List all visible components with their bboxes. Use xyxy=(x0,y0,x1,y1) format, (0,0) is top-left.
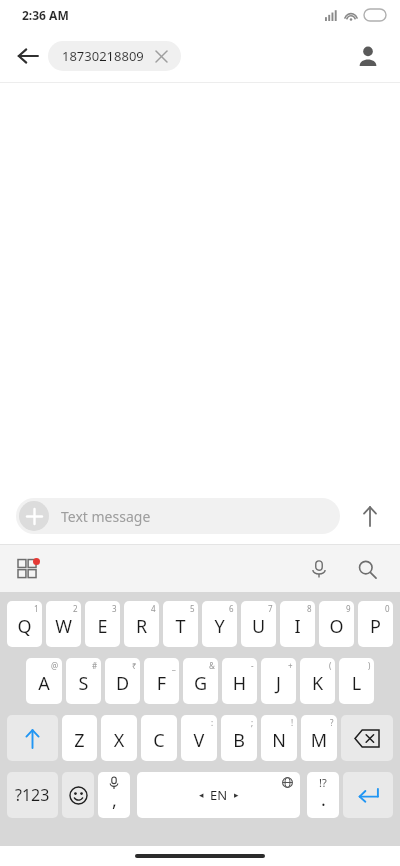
staticText: T xyxy=(163,614,198,639)
staticText: & xyxy=(209,660,215,671)
staticText: 1 xyxy=(34,603,39,614)
button[interactable]: Back xyxy=(8,36,48,76)
button[interactable]: 9 xyxy=(319,601,354,647)
staticText: ◂ xyxy=(199,790,204,800)
staticText: D xyxy=(105,671,140,696)
button[interactable]: 18730218809 xyxy=(48,41,181,71)
staticText: , xyxy=(112,788,117,813)
staticText: . xyxy=(321,787,326,812)
staticText: # xyxy=(92,660,98,671)
staticText: ▸ xyxy=(234,790,239,800)
button[interactable]: ?123 xyxy=(7,772,58,818)
button[interactable]: # xyxy=(66,658,101,704)
button[interactable] xyxy=(62,772,94,818)
button[interactable]: 4 xyxy=(124,601,159,647)
button[interactable]: 8 xyxy=(280,601,315,647)
button[interactable] xyxy=(341,715,393,761)
button[interactable]: ( xyxy=(300,658,335,704)
staticText: 18730218809 xyxy=(62,47,144,65)
button[interactable]: - xyxy=(222,658,257,704)
staticText: ? xyxy=(330,717,334,728)
staticText: F xyxy=(144,671,179,696)
button[interactable]: ; xyxy=(221,715,257,761)
staticText: Q xyxy=(7,614,42,639)
button[interactable]: Send xyxy=(348,494,392,538)
staticText: J xyxy=(261,671,296,696)
staticText: H xyxy=(222,671,257,696)
staticText: S xyxy=(66,671,101,696)
button[interactable]: & xyxy=(183,658,218,704)
staticText: N xyxy=(261,728,297,753)
staticText: A xyxy=(26,671,62,696)
button[interactable]: 0 xyxy=(358,601,393,647)
staticText: 8 xyxy=(307,603,312,614)
button[interactable]: 7 xyxy=(241,601,276,647)
button[interactable]: Stickers xyxy=(10,550,48,588)
staticText: 6 xyxy=(229,603,234,614)
staticText: K xyxy=(300,671,335,696)
staticText: ( xyxy=(329,660,332,671)
staticText: G xyxy=(183,671,218,696)
button[interactable]: 3 xyxy=(85,601,120,647)
staticText: U xyxy=(241,614,276,639)
staticText: E xyxy=(85,614,120,639)
staticText: _ xyxy=(172,660,176,671)
button[interactable]: Z xyxy=(62,715,97,761)
staticText: 3 xyxy=(112,603,117,614)
button[interactable]: X xyxy=(101,715,137,761)
button[interactable]: Search xyxy=(348,550,386,588)
staticText: I xyxy=(280,614,315,639)
staticText: W xyxy=(46,614,81,639)
button[interactable]: Text message xyxy=(16,498,340,534)
button[interactable]: + xyxy=(261,658,296,704)
button[interactable]: , xyxy=(98,772,130,818)
button[interactable] xyxy=(7,715,58,761)
staticText: ₹ xyxy=(132,660,137,671)
button[interactable]: ◂ xyxy=(137,772,300,818)
staticText: + xyxy=(288,660,293,671)
button[interactable]: ! xyxy=(261,715,297,761)
button[interactable]: @ xyxy=(26,658,62,704)
staticText: C xyxy=(141,728,177,753)
staticText: Text message xyxy=(61,507,151,526)
staticText: 4 xyxy=(151,603,156,614)
staticText: ; xyxy=(251,717,254,728)
staticText: !? xyxy=(319,775,327,790)
button[interactable] xyxy=(343,772,393,818)
staticText: P xyxy=(358,614,393,639)
staticText: ) xyxy=(368,660,371,671)
button[interactable]: !? xyxy=(307,772,339,818)
button[interactable]: 6 xyxy=(202,601,237,647)
staticText: - xyxy=(251,660,254,671)
staticText: 0 xyxy=(385,603,390,614)
staticText: R xyxy=(124,614,159,639)
staticText: 2 xyxy=(73,603,78,614)
staticText: 2:36 AM xyxy=(22,7,69,23)
button[interactable]: 5 xyxy=(163,601,198,647)
button[interactable]: ) xyxy=(339,658,374,704)
staticText: EN xyxy=(210,786,228,804)
staticText: ! xyxy=(291,717,294,728)
staticText: @ xyxy=(51,660,59,671)
button[interactable]: Contact xyxy=(348,36,388,76)
button[interactable]: : xyxy=(181,715,217,761)
button[interactable]: C xyxy=(141,715,177,761)
button[interactable]: 2 xyxy=(46,601,81,647)
staticText: : xyxy=(211,717,214,728)
staticText: 9 xyxy=(346,603,351,614)
button[interactable]: ₹ xyxy=(105,658,140,704)
staticText: O xyxy=(319,614,354,639)
staticText: L xyxy=(339,671,374,696)
button[interactable]: Voice input xyxy=(300,550,338,588)
staticText: B xyxy=(221,728,257,753)
staticText: ?123 xyxy=(15,784,50,806)
staticText: M xyxy=(301,728,337,753)
staticText: 7 xyxy=(268,603,273,614)
staticText: Y xyxy=(202,614,237,639)
button[interactable]: ? xyxy=(301,715,337,761)
button[interactable]: _ xyxy=(144,658,179,704)
staticText: X xyxy=(101,728,137,753)
button[interactable]: 1 xyxy=(7,601,42,647)
staticText: Z xyxy=(62,728,97,753)
staticText: V xyxy=(181,728,217,753)
